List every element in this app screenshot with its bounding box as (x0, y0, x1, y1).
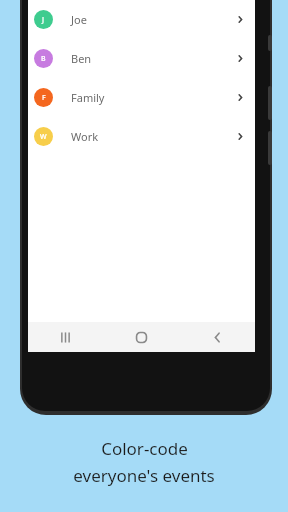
staticText: W (40, 132, 47, 142)
staticText: Joe (71, 12, 87, 27)
staticText: Ben (71, 51, 92, 66)
staticText: J (42, 15, 45, 25)
staticText: B (41, 54, 46, 64)
staticText: everyone's events (73, 464, 215, 487)
staticText: Work (71, 129, 99, 144)
button[interactable]: Home (103, 322, 179, 352)
staticText: Family (71, 90, 105, 105)
button[interactable]: Back (179, 322, 255, 352)
button[interactable]: B (28, 39, 255, 78)
staticText: Color-code (101, 437, 188, 460)
staticText: F (42, 93, 46, 103)
button[interactable]: F (28, 78, 255, 117)
button[interactable]: J (28, 0, 255, 39)
button[interactable]: Recent apps (28, 322, 103, 352)
button[interactable]: W (28, 117, 255, 156)
